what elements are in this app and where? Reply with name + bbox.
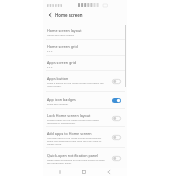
staticText: Home screen layout <box>47 28 82 33</box>
button[interactable]: Home screen layout <box>43 24 127 40</box>
staticText: Add new apps to the Home screen automati… <box>47 136 108 145</box>
button[interactable]: Back <box>103 168 115 176</box>
button[interactable]: Quick-open notification panel <box>43 148 127 169</box>
staticText: Home screen <box>55 12 83 18</box>
staticText: App icon badges <box>47 97 76 102</box>
staticText: Prevent items on the Home screen from be… <box>47 118 108 124</box>
staticText: 5 x 5 <box>47 49 53 52</box>
button[interactable]: Off <box>111 154 122 163</box>
staticText: Apps button <box>47 76 69 81</box>
button[interactable]: Off <box>111 114 122 123</box>
button[interactable]: Home <box>78 168 90 176</box>
staticText: Apps screen grid <box>47 60 77 65</box>
staticText: Show a button on the Home screen that op… <box>47 81 108 87</box>
button[interactable]: Apps screen grid <box>43 56 127 71</box>
button[interactable]: Home screen grid <box>43 40 127 56</box>
button[interactable]: Apps button <box>43 71 127 92</box>
button[interactable]: Recent apps <box>54 168 66 176</box>
button[interactable]: Lock Home screen layout <box>43 109 127 127</box>
staticText: Swipe down anywhere on the Home screen t… <box>47 158 108 164</box>
button[interactable]: App icon badges <box>43 92 127 109</box>
button[interactable]: Navigate up <box>47 12 53 18</box>
button[interactable]: On <box>111 96 122 105</box>
staticText: Lock Home screen layout <box>47 113 91 118</box>
staticText: Home screen grid <box>47 44 78 49</box>
staticText: 5 x 5 <box>47 65 53 68</box>
staticText: Add apps to Home screen <box>47 131 92 136</box>
button[interactable]: Off <box>111 77 122 86</box>
staticText: Show with number <box>47 102 69 105</box>
staticText: Quick-open notification panel <box>47 153 99 158</box>
button[interactable]: Off <box>111 133 122 142</box>
button[interactable]: Add apps to Home screen <box>43 127 127 148</box>
staticText: Home and Apps screens <box>47 33 75 36</box>
